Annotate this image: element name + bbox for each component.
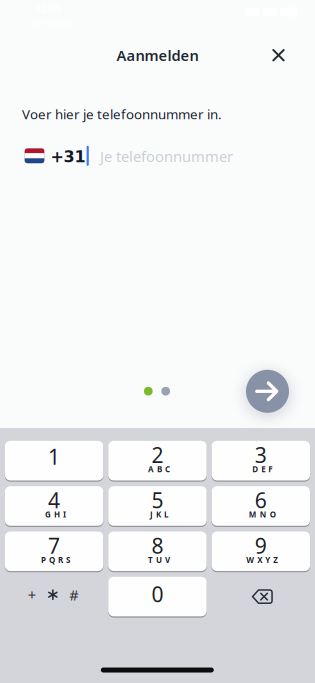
staticText: TUV [148, 554, 170, 565]
button[interactable] [246, 370, 289, 413]
button[interactable]: 9 [212, 531, 310, 572]
button[interactable] [212, 577, 310, 616]
button[interactable]: 1 [5, 441, 103, 482]
button[interactable]: 8 [108, 531, 207, 572]
staticText: GHI [45, 509, 66, 520]
staticText: ABC [148, 464, 170, 474]
button[interactable]: 6 [212, 486, 310, 527]
staticText: 0 [151, 580, 163, 608]
button[interactable] [261, 38, 295, 72]
staticText: +31 [50, 148, 85, 166]
staticText: 8 [151, 531, 163, 559]
staticText: 2 [151, 441, 163, 469]
staticText: 7 [48, 531, 60, 559]
button[interactable]: 5 [108, 486, 207, 527]
staticText: DEF [252, 464, 272, 474]
button[interactable]: 3 [212, 441, 310, 482]
staticText: 5 [151, 486, 163, 514]
staticText: 1 [48, 443, 60, 471]
staticText: Aanmelden [116, 46, 198, 65]
staticText: # [69, 585, 78, 604]
button[interactable]: 2 [108, 441, 207, 482]
staticText: 3 [255, 441, 267, 469]
staticText: + [28, 585, 36, 604]
staticText: MNO [249, 509, 276, 520]
button[interactable]: 0 [108, 577, 207, 618]
staticText: JKL [150, 509, 168, 520]
button[interactable]: 4 [5, 486, 103, 527]
button[interactable]: 7 [5, 531, 103, 572]
staticText: 4 [48, 486, 60, 514]
button[interactable]: + [5, 577, 103, 616]
staticText: WXYZ [246, 554, 278, 565]
button[interactable]: +31 [0, 134, 315, 178]
staticText: PQRS [41, 554, 70, 565]
staticText: Je telefoonnummer [100, 146, 233, 166]
staticText: 9 [255, 531, 267, 559]
staticText: Voer hier je telefoonnummer in. [22, 105, 222, 123]
staticText: 6 [255, 486, 267, 514]
